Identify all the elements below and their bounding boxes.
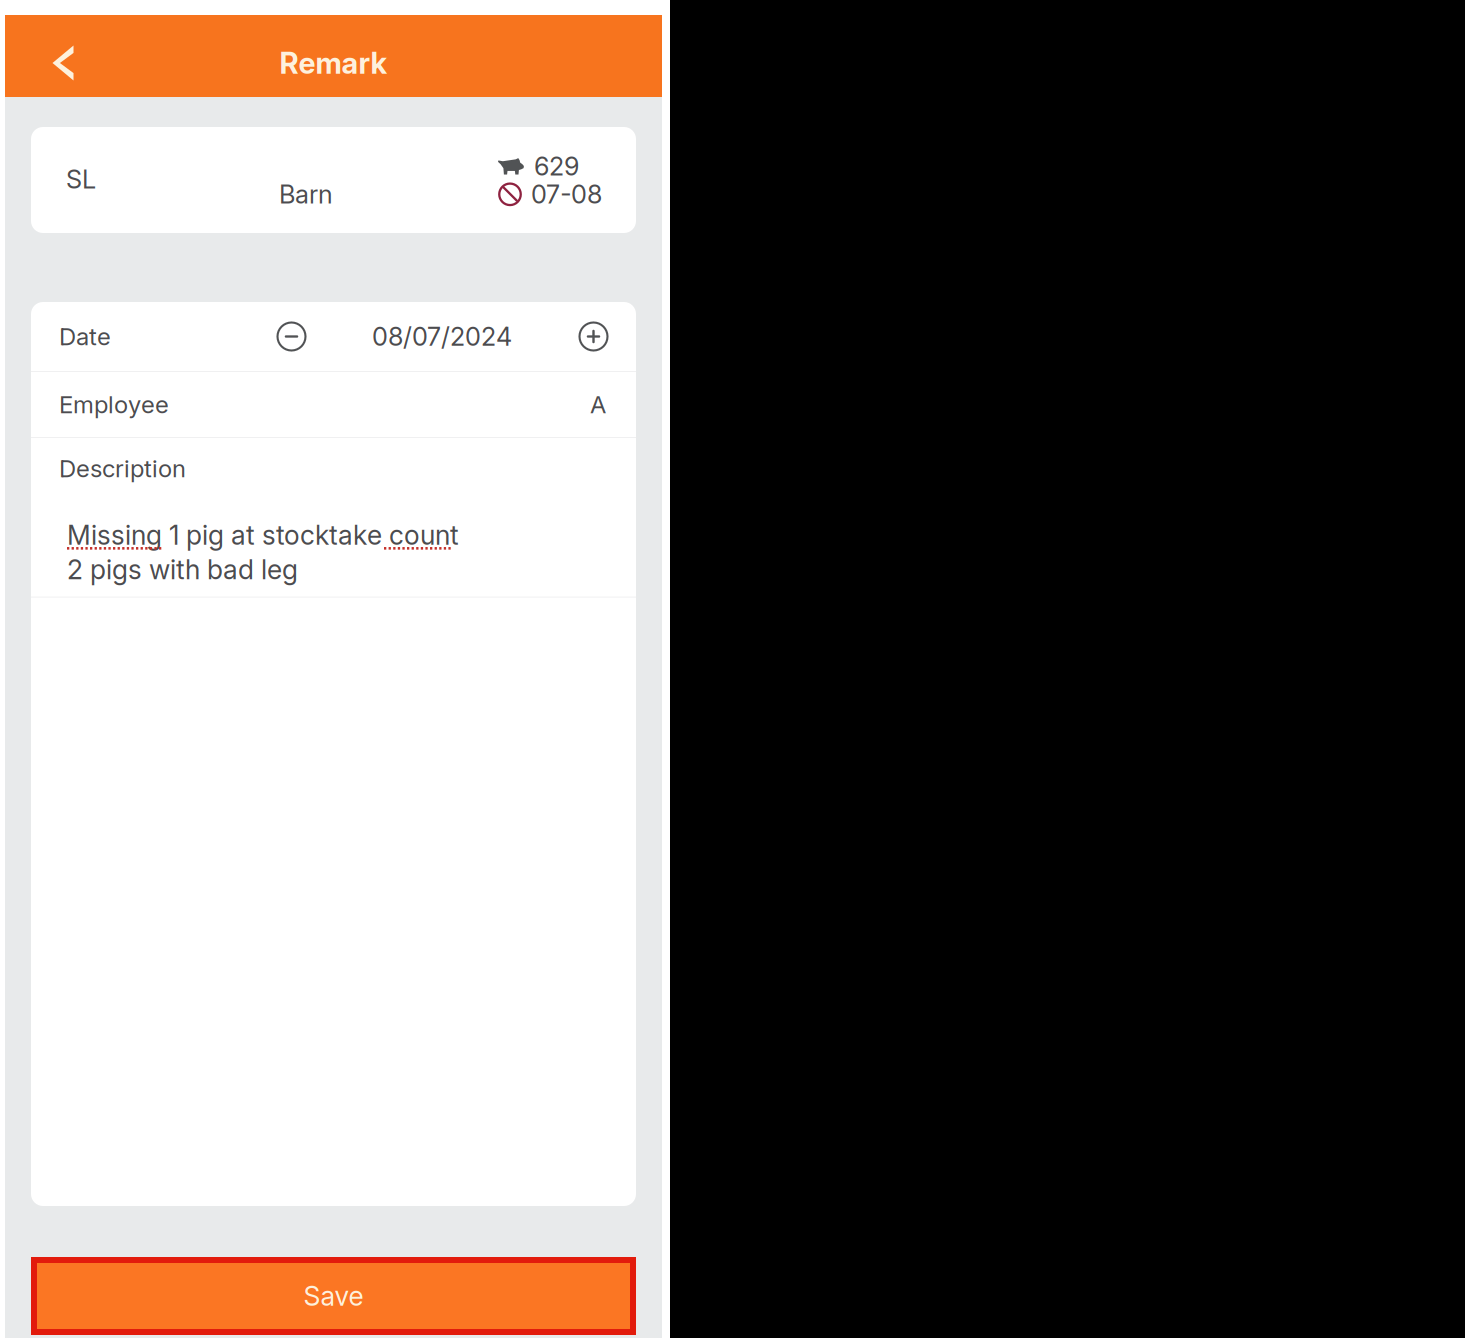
staticText: Barn [279, 179, 333, 210]
button[interactable]: Employee [31, 372, 636, 437]
staticText: Save [303, 1280, 363, 1312]
staticText: Remark [279, 45, 387, 81]
staticText: 08/07/2024 [372, 321, 512, 352]
staticText: SL [66, 164, 96, 195]
staticText: 07-08 [531, 179, 602, 210]
button[interactable]: Next day [578, 321, 609, 352]
button[interactable]: Save [5, 1257, 662, 1335]
staticText: Date [59, 322, 111, 351]
button[interactable]: Back [36, 33, 90, 93]
button[interactable]: Previous day [276, 321, 307, 352]
staticText: 629 [534, 151, 579, 182]
staticText: Employee [59, 390, 169, 419]
staticText: Missing 1 pig at stocktake count [67, 519, 459, 551]
staticText: A [590, 390, 606, 419]
button[interactable]: Description [31, 438, 636, 597]
staticText: Description [59, 454, 186, 483]
staticText: 2 pigs with bad leg [67, 553, 298, 586]
